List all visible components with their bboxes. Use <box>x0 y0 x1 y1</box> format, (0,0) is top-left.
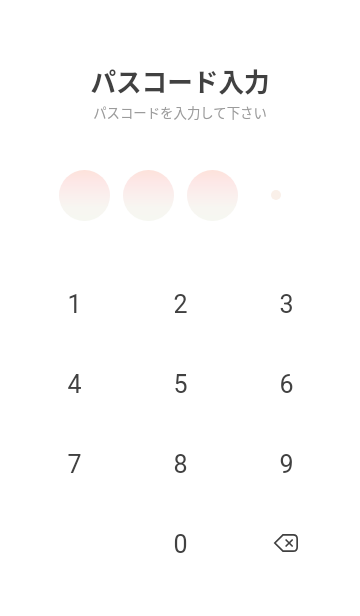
staticText: パスコードを入力して下さい <box>0 102 360 121</box>
button[interactable]: 5 <box>127 344 233 424</box>
button[interactable]: 9 <box>233 424 339 504</box>
staticText: 9 <box>279 450 294 479</box>
staticText: 8 <box>173 450 188 479</box>
button[interactable]: Backspace <box>233 504 339 584</box>
button[interactable]: 1 <box>21 264 127 344</box>
button[interactable]: 8 <box>127 424 233 504</box>
staticText: パスコード入力 <box>0 62 360 99</box>
staticText: 5 <box>173 370 188 399</box>
staticText: 0 <box>173 530 188 559</box>
staticText: 7 <box>67 450 82 479</box>
button[interactable]: 6 <box>233 344 339 424</box>
button[interactable]: 0 <box>127 504 233 584</box>
button[interactable]: 7 <box>21 424 127 504</box>
staticText: 2 <box>173 290 188 319</box>
staticText: 3 <box>279 290 294 319</box>
button[interactable]: 2 <box>127 264 233 344</box>
button[interactable]: 4 <box>21 344 127 424</box>
staticText: 6 <box>279 370 294 399</box>
staticText: 4 <box>67 370 82 399</box>
button[interactable]: 3 <box>233 264 339 344</box>
staticText: 1 <box>67 290 82 319</box>
